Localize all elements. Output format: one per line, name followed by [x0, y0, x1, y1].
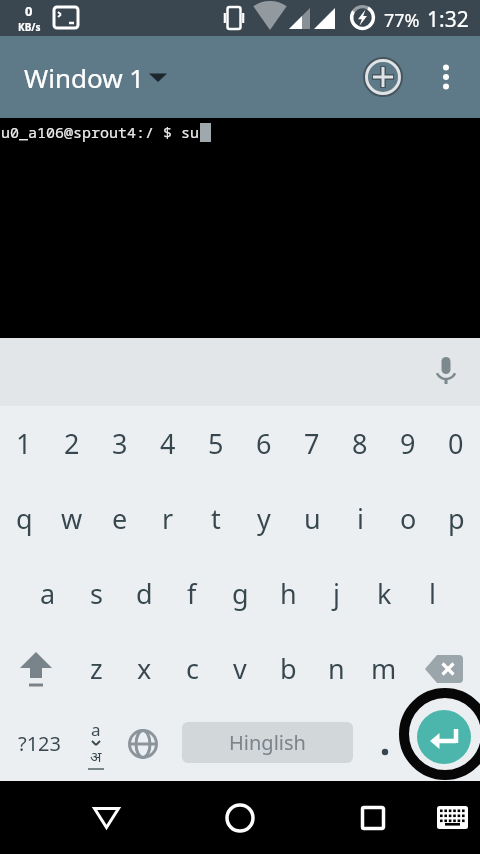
staticText: 7 [304, 425, 320, 462]
staticText: अ [90, 746, 102, 766]
button[interactable] [120, 706, 166, 781]
staticText: 1 [16, 425, 32, 462]
button[interactable]: d [120, 556, 168, 631]
staticText: p [448, 500, 465, 537]
button[interactable]: 4 [144, 406, 192, 481]
button[interactable]: w [48, 481, 96, 556]
button[interactable]: l [408, 556, 456, 631]
button[interactable]: x [120, 631, 168, 706]
button[interactable]: 2 [48, 406, 96, 481]
button[interactable]: Window 1 [24, 36, 167, 118]
staticText: h [280, 575, 297, 612]
button[interactable]: u [288, 481, 336, 556]
button[interactable]: a [24, 556, 72, 631]
button[interactable]: f [168, 556, 216, 631]
staticText: f [187, 575, 197, 612]
staticText: 2 [64, 425, 80, 462]
button[interactable]: k [360, 556, 408, 631]
button[interactable]: i [336, 481, 384, 556]
button[interactable]: 9 [384, 406, 432, 481]
staticText: KB/s [18, 20, 41, 34]
button[interactable]: h [264, 556, 312, 631]
staticText: Hinglish [229, 729, 306, 756]
button[interactable]: o [384, 481, 432, 556]
staticText: u0_a106@sprout4:/ $ su [1, 122, 200, 142]
staticText: e [112, 500, 128, 537]
button[interactable] [408, 631, 480, 706]
button[interactable]: r [144, 481, 192, 556]
staticText: w [61, 500, 83, 537]
button[interactable]: 6 [240, 406, 288, 481]
staticText: 4 [160, 425, 176, 462]
staticText: 1:32 [427, 5, 469, 34]
button[interactable] [204, 781, 276, 854]
staticText: k [377, 575, 392, 612]
staticText: Window 1 [24, 60, 145, 95]
button[interactable]: Hinglish [182, 722, 353, 763]
staticText: r [162, 500, 174, 537]
staticText: j [333, 575, 340, 612]
button[interactable]: v [216, 631, 264, 706]
button[interactable] [434, 53, 458, 101]
button[interactable]: 3 [96, 406, 144, 481]
staticText: l [429, 575, 436, 612]
staticText: t [211, 500, 221, 537]
staticText: o [400, 500, 417, 537]
staticText: d [136, 575, 153, 612]
staticText: 9 [400, 425, 416, 462]
staticText: 8 [352, 425, 368, 462]
button[interactable] [337, 781, 409, 854]
staticText: q [16, 500, 33, 537]
staticText: c [186, 650, 199, 687]
staticText: 6 [256, 425, 272, 462]
staticText: 0 [25, 2, 33, 20]
button[interactable]: j [312, 556, 360, 631]
button[interactable] [0, 631, 72, 706]
button[interactable]: a [72, 706, 120, 781]
button[interactable]: p [432, 481, 480, 556]
button[interactable]: q [0, 481, 48, 556]
button[interactable]: 7 [288, 406, 336, 481]
staticText: 3 [112, 425, 128, 462]
staticText: u [304, 500, 321, 537]
button[interactable]: g [216, 556, 264, 631]
staticText: s [90, 575, 103, 612]
staticText: n [328, 650, 345, 687]
staticText: z [90, 650, 103, 687]
button[interactable]: 1 [0, 406, 48, 481]
button[interactable] [362, 56, 404, 98]
button[interactable]: 5 [192, 406, 240, 481]
staticText: 5 [208, 425, 224, 462]
button[interactable] [70, 781, 142, 854]
button[interactable] [361, 706, 409, 781]
button[interactable]: e [96, 481, 144, 556]
staticText: a [40, 575, 56, 612]
staticText: x [137, 650, 152, 687]
button[interactable]: s [72, 556, 120, 631]
staticText: ?123 [18, 730, 61, 757]
button[interactable]: m [360, 631, 408, 706]
button[interactable]: z [72, 631, 120, 706]
button[interactable] [430, 781, 474, 854]
button[interactable] [417, 710, 471, 764]
staticText: g [232, 575, 249, 612]
button[interactable]: ?123 [8, 706, 70, 781]
button[interactable]: y [240, 481, 288, 556]
button[interactable]: 0 [432, 406, 480, 481]
staticText: a [91, 718, 101, 741]
staticText: 77% [384, 8, 420, 33]
staticText: v [233, 650, 247, 687]
button[interactable]: 8 [336, 406, 384, 481]
staticText: i [357, 500, 364, 537]
button[interactable]: n [312, 631, 360, 706]
staticText: 0 [448, 425, 464, 462]
staticText: y [257, 500, 271, 537]
staticText: m [371, 650, 397, 687]
button[interactable]: t [192, 481, 240, 556]
button[interactable]: b [264, 631, 312, 706]
button[interactable]: c [168, 631, 216, 706]
staticText: b [280, 650, 297, 687]
button[interactable] [434, 357, 458, 385]
